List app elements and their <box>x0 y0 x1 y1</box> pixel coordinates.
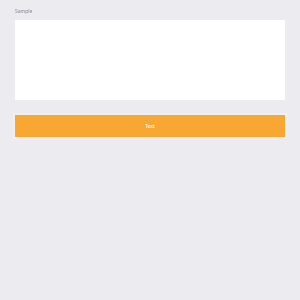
button[interactable]: Text <box>13 113 287 139</box>
staticText: Text <box>145 123 155 130</box>
staticText: Sample <box>15 8 33 15</box>
